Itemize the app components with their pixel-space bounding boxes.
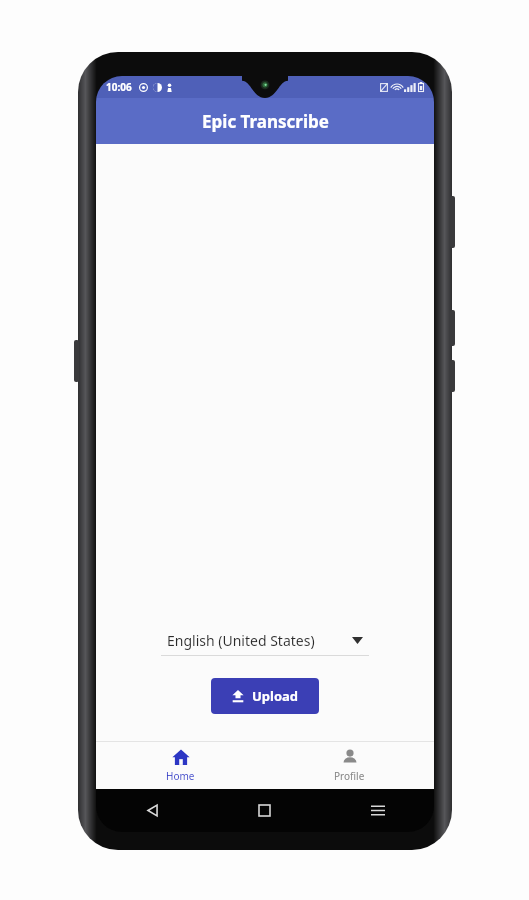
button[interactable]: Recent apps — [321, 789, 434, 832]
button[interactable]: Home — [208, 789, 321, 832]
staticText: Home — [166, 769, 195, 783]
button[interactable]: Upload — [211, 678, 319, 714]
staticText: Profile — [334, 769, 365, 783]
staticText: 10:06 — [106, 80, 132, 94]
button[interactable]: Home — [96, 742, 265, 789]
button[interactable]: Profile — [265, 742, 434, 789]
button[interactable]: Back — [96, 789, 208, 832]
staticText: Upload — [252, 687, 299, 705]
button[interactable]: English (United States) — [161, 631, 369, 656]
staticText: Epic Transcribe — [202, 110, 329, 133]
staticText: English (United States) — [167, 631, 315, 650]
